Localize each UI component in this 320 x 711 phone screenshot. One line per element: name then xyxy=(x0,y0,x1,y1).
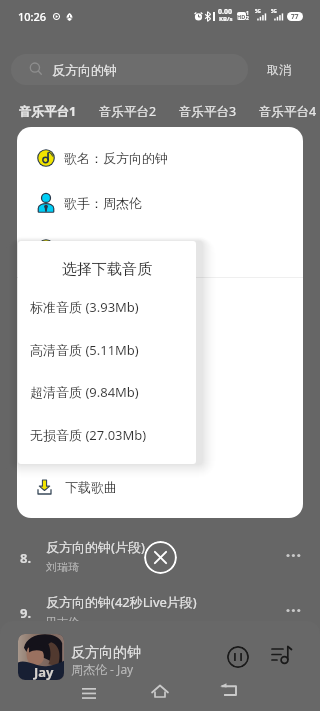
button[interactable]: 8. xyxy=(0,520,320,575)
staticText: 5G xyxy=(255,8,261,14)
staticText: 0.00 xyxy=(218,7,232,17)
button[interactable]: 超清音质 (9.84Mb) xyxy=(18,371,196,413)
button[interactable]: Close xyxy=(144,541,177,574)
staticText: HD xyxy=(237,13,246,20)
button[interactable]: Back xyxy=(216,681,246,711)
button[interactable]: 音乐平台2 xyxy=(88,99,168,123)
button[interactable]: 无损音质 (27.03Mb) xyxy=(18,414,196,456)
button[interactable]: 高清音质 (5.11Mb) xyxy=(18,329,196,371)
button[interactable]: 取消 xyxy=(267,62,291,77)
button[interactable]: 标准音质 (3.93Mb) xyxy=(18,286,196,328)
staticText: 音乐平台2 xyxy=(99,103,157,120)
staticText: 无损音质 (27.03Mb) xyxy=(30,426,147,444)
staticText: 10:26 xyxy=(18,9,47,24)
staticText: 歌名：反方向的钟 xyxy=(64,150,168,166)
staticText: 刘瑞琦 xyxy=(46,560,79,574)
button[interactable]: Playlist xyxy=(271,645,295,669)
staticText: 田志伦 xyxy=(46,615,79,629)
button[interactable]: 9. xyxy=(0,575,320,630)
staticText: 音乐平台3 xyxy=(179,103,237,120)
button[interactable]: 歌名：反方向的钟 xyxy=(17,135,303,180)
staticText: 选择下载音质 xyxy=(18,260,196,279)
button[interactable]: Pause xyxy=(227,646,249,668)
staticText: 8. xyxy=(20,549,32,567)
staticText: Jay xyxy=(34,663,54,680)
staticText: 反方向的钟(42秒Live片段) xyxy=(46,593,197,611)
staticText: 取消 xyxy=(267,62,291,77)
button[interactable]: 音乐平台3 xyxy=(168,99,248,123)
staticText: 反方向的钟 xyxy=(52,62,117,78)
staticText: 音乐平台4 xyxy=(259,103,317,120)
button[interactable]: Recents xyxy=(74,681,104,711)
staticText: 反方向的钟 xyxy=(71,644,141,662)
staticText: 下载歌曲 xyxy=(65,479,117,495)
button[interactable]: Home xyxy=(145,681,175,711)
button[interactable]: 专辑：范特西 xyxy=(17,225,303,270)
staticText: 5G xyxy=(271,8,277,14)
button[interactable]: 反方向的钟 xyxy=(11,54,248,85)
staticText: 高清音质 (5.11Mb) xyxy=(30,341,139,359)
button[interactable]: 音乐平台1 xyxy=(8,99,88,123)
button[interactable]: Jay xyxy=(18,634,64,680)
staticText: 9. xyxy=(20,604,32,622)
staticText: 反方向的钟(片段) xyxy=(46,538,145,556)
staticText: 周杰伦 - Jay xyxy=(71,661,134,677)
staticText: 音乐平台1 xyxy=(19,103,77,120)
staticText: 2 xyxy=(246,15,249,22)
staticText: 1 xyxy=(246,10,249,17)
staticText: 标准音质 (3.93Mb) xyxy=(30,298,139,316)
button[interactable]: 音乐平台4 xyxy=(248,99,320,123)
staticText: 超清音质 (9.84Mb) xyxy=(30,383,139,401)
staticText: KB/s xyxy=(219,15,233,23)
staticText: 专辑：范特西 xyxy=(64,240,142,256)
button[interactable]: 下载歌曲 xyxy=(17,464,303,509)
button[interactable]: 歌手：周杰伦 xyxy=(17,180,303,225)
staticText: 77 xyxy=(291,12,299,21)
staticText: 歌手：周杰伦 xyxy=(64,195,142,211)
